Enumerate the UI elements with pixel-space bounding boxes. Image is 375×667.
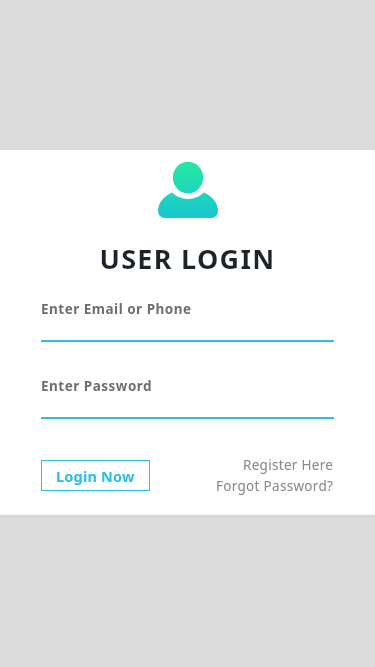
staticText: Login Now: [56, 466, 135, 486]
button[interactable]: Register Here: [243, 456, 334, 474]
button[interactable]: Login Now: [41, 460, 150, 491]
staticText: Enter Password: [41, 377, 153, 395]
staticText: Enter Email or Phone: [41, 300, 192, 318]
staticText: Forgot Password?: [216, 477, 334, 495]
other: User avatar: [158, 161, 218, 218]
staticText: USER LOGIN: [99, 240, 276, 277]
staticText: Register Here: [243, 456, 334, 474]
button[interactable]: Forgot Password?: [216, 477, 334, 495]
